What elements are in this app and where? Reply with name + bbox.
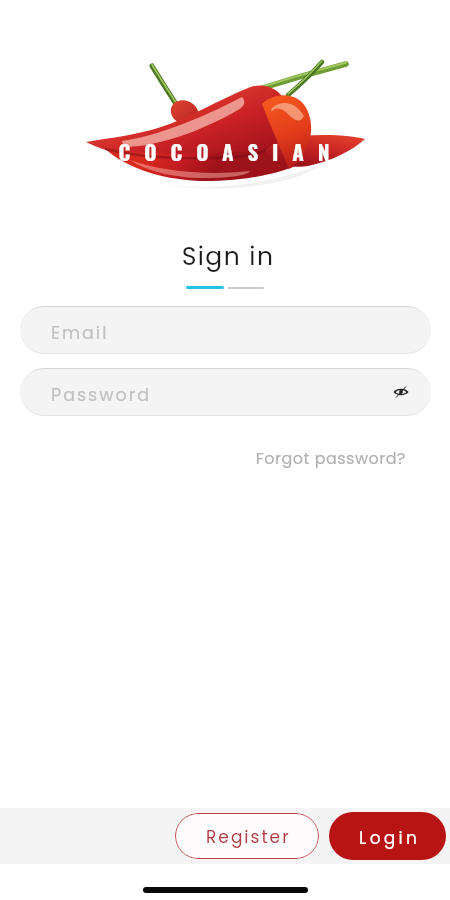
staticText: Password bbox=[51, 383, 152, 408]
staticText: COCOASIAN bbox=[6, 136, 450, 900]
button[interactable]: Password bbox=[20, 368, 431, 416]
staticText: Sign in bbox=[3, 239, 450, 900]
staticText: Register bbox=[206, 825, 291, 849]
button[interactable]: Email bbox=[20, 306, 431, 354]
staticText: Email bbox=[51, 321, 109, 346]
button[interactable]: Show password bbox=[389, 380, 413, 404]
button[interactable]: Login bbox=[329, 812, 446, 860]
button[interactable]: Forgot password? bbox=[20, 447, 406, 469]
staticText: Login bbox=[359, 826, 421, 850]
button[interactable]: Register bbox=[175, 813, 319, 859]
